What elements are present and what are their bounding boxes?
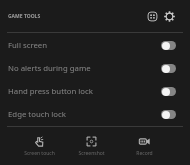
staticText: Full screen — [8, 40, 48, 51]
button[interactable]: Performance mode — [144, 8, 160, 24]
staticText: No alerts during game — [8, 63, 91, 74]
button[interactable]: Screen touch — [13, 136, 65, 157]
button[interactable]: Screenshot — [65, 136, 118, 157]
button[interactable]: Toggle — [161, 87, 176, 96]
button[interactable]: Edge touch lock — [0, 103, 190, 126]
staticText: Edge touch lock — [8, 109, 66, 120]
staticText: GAME TOOLS — [8, 13, 41, 20]
button[interactable]: No alerts during game — [0, 57, 190, 80]
button[interactable]: Record — [118, 136, 171, 157]
button[interactable]: Toggle — [161, 110, 176, 119]
button[interactable]: Toggle — [161, 64, 176, 73]
button[interactable]: Toggle — [161, 41, 176, 50]
staticText: Screenshot — [78, 150, 105, 157]
staticText: Record — [136, 150, 153, 157]
button[interactable]: Full screen — [0, 34, 190, 57]
button[interactable]: Settings — [161, 8, 177, 24]
staticText: Hand press button lock — [8, 86, 93, 97]
button[interactable]: Hand press button lock — [0, 80, 190, 103]
staticText: Screen touch — [24, 150, 55, 157]
